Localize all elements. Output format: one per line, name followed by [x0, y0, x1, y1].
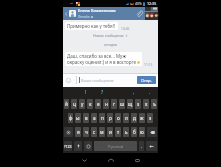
button[interactable]: г	[111, 99, 117, 109]
staticText: э	[149, 115, 152, 121]
button[interactable]: emoji	[84, 141, 92, 151]
button[interactable]: ю	[139, 127, 145, 137]
staticText: 40%	[135, 1, 142, 6]
staticText: т	[117, 129, 120, 135]
button[interactable]: Отпр.	[137, 76, 156, 84]
button[interactable]: enter	[146, 141, 157, 151]
staticText: Даш, спасибо за все... Муж	[67, 53, 126, 59]
button[interactable]: Home	[106, 155, 116, 165]
staticText: к	[89, 101, 92, 107]
button[interactable]: ?123	[64, 141, 72, 151]
staticText: х	[145, 101, 148, 107]
staticText: ы	[76, 115, 80, 121]
staticText: м	[100, 129, 104, 135]
staticText: й	[65, 101, 68, 107]
button[interactable]: .	[142, 87, 158, 98]
staticText: н	[105, 101, 108, 107]
staticText: л	[125, 115, 128, 121]
button[interactable]: щ	[127, 99, 133, 109]
button[interactable]: у	[79, 99, 85, 109]
button[interactable]: ъ	[151, 99, 157, 109]
button[interactable]: Русский	[94, 141, 137, 151]
staticText: ч	[85, 129, 88, 135]
staticText: а	[93, 115, 96, 121]
staticText: о	[117, 115, 120, 121]
staticText: ф	[69, 115, 73, 121]
button[interactable]: Attach	[134, 7, 145, 20]
button[interactable]: Ваше сообщение	[81, 78, 137, 83]
button[interactable]: .	[139, 141, 144, 151]
button[interactable]: shift	[64, 127, 73, 137]
staticText: п	[101, 115, 104, 121]
button[interactable]: del	[147, 127, 157, 137]
button[interactable]: с	[91, 127, 97, 137]
staticText: Елена Блаженкова	[78, 8, 116, 14]
button[interactable]: м	[99, 127, 105, 137]
button[interactable]: ь	[123, 127, 129, 137]
button[interactable]: ?	[94, 87, 110, 98]
button[interactable]: Back	[79, 155, 89, 165]
button[interactable]: а	[91, 113, 97, 123]
staticText: ю	[140, 129, 144, 135]
button[interactable]: Даш, спасибо за все... Муж	[65, 52, 142, 66]
button[interactable]: ф	[68, 113, 73, 123]
button[interactable]: з	[135, 99, 141, 109]
button[interactable]: ч	[83, 127, 89, 137]
button[interactable]: Примерно как у тебя!!	[65, 22, 118, 30]
staticText: ц	[73, 101, 76, 107]
button[interactable]: в	[83, 113, 89, 123]
button[interactable]: п	[99, 113, 105, 123]
staticText: 11:13	[144, 62, 153, 66]
button[interactable]: д	[131, 113, 137, 123]
button[interactable]: о	[115, 113, 121, 123]
staticText: Ваше сообщение	[81, 78, 114, 83]
button[interactable]: ц	[71, 99, 77, 109]
button[interactable]: р	[107, 113, 113, 123]
staticText: ж	[140, 115, 144, 121]
staticText: щ	[128, 101, 133, 107]
button[interactable]: к	[87, 99, 93, 109]
staticText: з	[137, 101, 140, 107]
button[interactable]: й	[64, 99, 69, 109]
staticText: .	[149, 89, 151, 96]
button[interactable]: э	[147, 113, 153, 123]
button[interactable]: ж	[139, 113, 145, 123]
staticText: Онлайн	[78, 15, 90, 19]
button[interactable]: Avatar	[69, 10, 76, 17]
button[interactable]: Emoji	[65, 77, 72, 84]
staticText: ъ	[153, 101, 156, 107]
staticText: Отпр.	[141, 78, 152, 83]
staticText: е	[97, 101, 100, 107]
staticText: 14:45	[121, 26, 130, 30]
button[interactable]: Photo	[145, 7, 158, 20]
button[interactable]: н	[103, 99, 109, 109]
button[interactable]: Back	[63, 7, 69, 20]
staticText: ш	[120, 101, 125, 107]
button[interactable]: л	[123, 113, 129, 123]
staticText: окраску оценил:) и я в восторге	[67, 59, 136, 65]
button[interactable]: я	[75, 127, 81, 137]
button[interactable]: б	[131, 127, 137, 137]
staticText: в	[85, 115, 88, 121]
staticText: ?123	[64, 144, 72, 149]
button[interactable]: ш	[119, 99, 125, 109]
staticText: Русский	[108, 144, 124, 149]
staticText: сегодня	[63, 42, 158, 47]
staticText: ?	[101, 89, 104, 96]
button[interactable]: т	[115, 127, 121, 137]
button[interactable]: ы	[75, 113, 81, 123]
button[interactable]: mic	[74, 141, 82, 151]
button[interactable]: ,	[126, 87, 142, 98]
button[interactable]: х	[143, 99, 149, 109]
button[interactable]: !	[78, 87, 94, 98]
staticText: д	[133, 115, 136, 121]
staticText: г	[113, 101, 116, 107]
staticText: .	[141, 144, 142, 149]
button[interactable]: е	[95, 99, 101, 109]
button[interactable]: Recents	[132, 155, 142, 165]
button[interactable]: и	[107, 127, 113, 137]
staticText: б	[133, 129, 136, 135]
staticText: р	[109, 115, 112, 121]
